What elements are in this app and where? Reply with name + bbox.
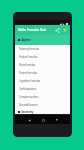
button[interactable]: Recents [54,117,60,123]
staticText: Factoring Formulas [19,47,39,51]
button[interactable]: Factoring Formulas [15,45,70,53]
button[interactable]: Geometry [15,109,70,114]
button[interactable]: Algebra [15,35,70,45]
staticText: Algebra [21,38,31,42]
staticText: Logarithm Formulas [19,79,40,83]
button[interactable]: Home [40,117,46,123]
button[interactable]: Roots Formulas [15,61,70,69]
staticText: Useful equations [19,87,37,91]
button[interactable]: Complex numbers [15,93,70,101]
staticText: Powers Formulas [19,71,37,75]
staticText: Binomial theorem [19,103,38,107]
staticText: Maths Formulas Pack [18,28,47,32]
button[interactable]: Product Formulas [15,53,70,61]
button[interactable]: Share [53,26,61,34]
button[interactable]: Useful equations [15,85,70,93]
button[interactable]: Binomial theorem [15,101,70,109]
staticText: Geometry [21,110,34,114]
button[interactable]: Powers Formulas [15,69,70,77]
button[interactable]: Back [26,117,32,123]
staticText: Complex numbers [19,95,39,99]
button[interactable]: Favorite [61,26,69,34]
staticText: Roots Formulas [19,63,36,67]
button[interactable]: Logarithm Formulas [15,77,70,85]
staticText: Product Formulas [19,55,38,59]
